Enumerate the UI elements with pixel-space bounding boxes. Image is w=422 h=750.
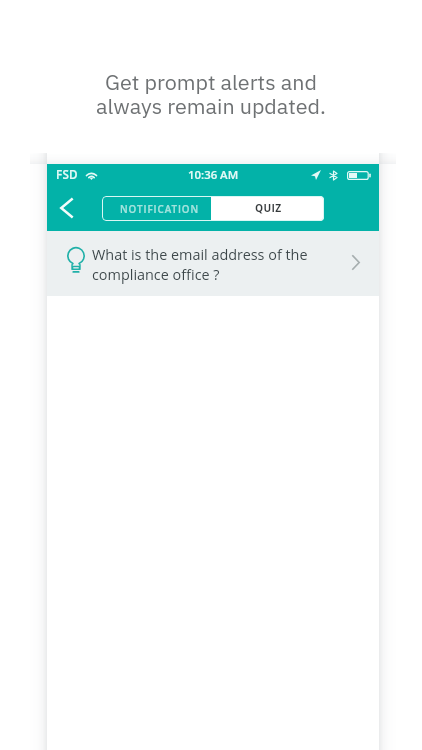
staticText: 10:36 AM [188,167,239,183]
button[interactable]: Back [52,195,80,223]
staticText: NOTIFICATION [120,203,200,216]
button[interactable]: What is the email address of the complia… [47,231,379,296]
button[interactable]: NOTIFICATION [102,196,211,221]
staticText: FSD [56,167,78,183]
staticText: Get prompt alerts and always remain upda… [96,68,326,120]
staticText: What is the email address of the complia… [92,245,331,284]
staticText: QUIZ [255,201,282,215]
button[interactable]: QUIZ [211,196,324,221]
